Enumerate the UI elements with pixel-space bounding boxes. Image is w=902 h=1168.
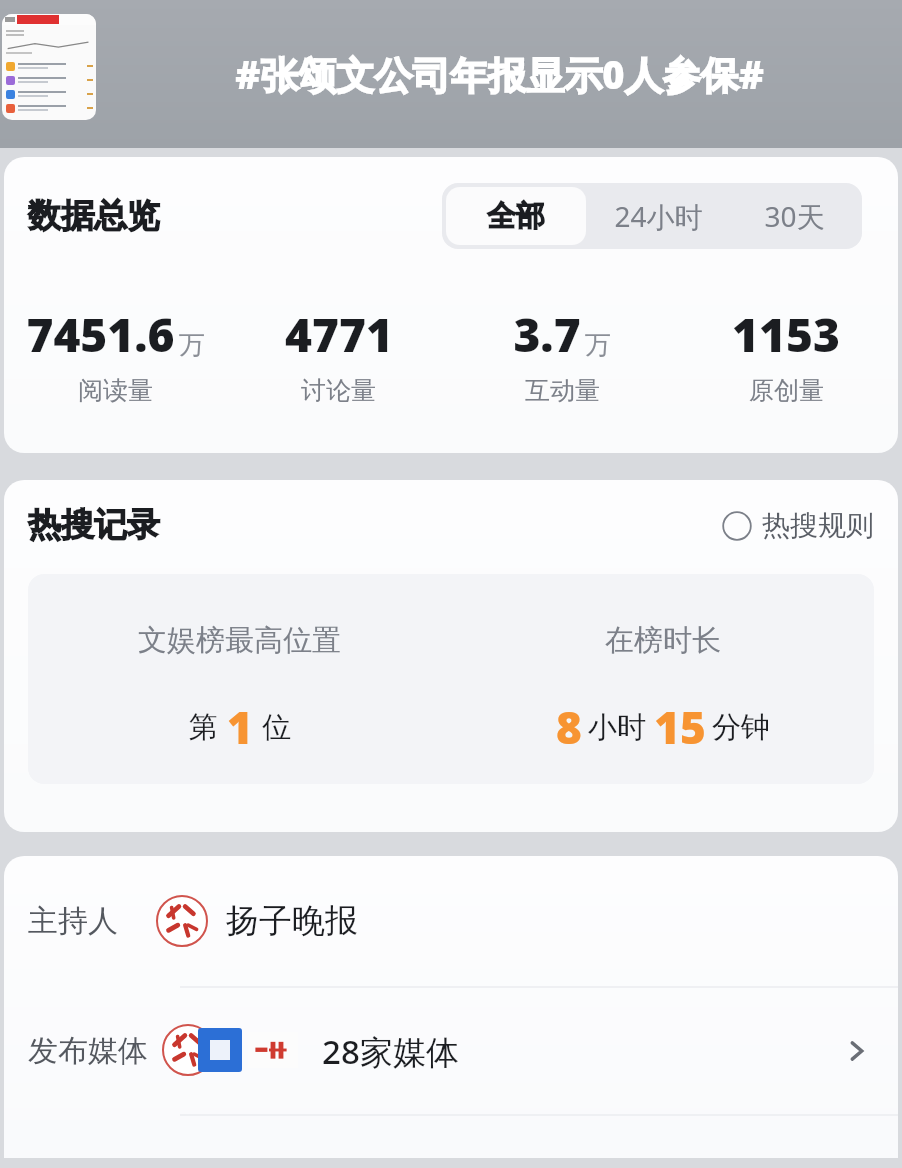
- staticText: 阅读量: [78, 375, 153, 406]
- staticText: 文娱榜最高位置: [138, 622, 341, 659]
- staticText: 7451.6: [26, 303, 175, 366]
- staticText: 原创量: [749, 375, 824, 406]
- staticText: 1153: [732, 303, 840, 366]
- button[interactable]: 主持人: [4, 856, 898, 986]
- staticText: 24小时: [614, 197, 703, 235]
- button[interactable]: Help: [722, 508, 874, 543]
- button[interactable]: 全部: [446, 187, 586, 245]
- staticText: 4771: [285, 303, 393, 366]
- staticText: 讨论量: [301, 375, 376, 406]
- staticText: 万: [585, 329, 611, 362]
- button[interactable]: 24小时: [590, 183, 726, 249]
- staticText: 在榜时长: [605, 622, 721, 659]
- staticText: 万: [179, 329, 205, 362]
- staticText: 8: [556, 697, 582, 757]
- staticText: 热搜规则: [762, 508, 874, 543]
- staticText: 3.7: [513, 303, 581, 366]
- staticText: 小时: [588, 709, 646, 746]
- staticText: 数据总览: [28, 195, 160, 237]
- staticText: 30天: [764, 197, 825, 235]
- button[interactable]: 发布媒体: [4, 988, 898, 1114]
- staticText: 热搜记录: [28, 504, 160, 546]
- other: More media: [840, 1034, 874, 1068]
- button[interactable]: 30天: [726, 183, 862, 249]
- staticText: 发布媒体: [28, 1032, 148, 1070]
- staticText: 28家媒体: [322, 1029, 459, 1074]
- staticText: 15: [654, 697, 706, 757]
- staticText: 全部: [487, 198, 545, 235]
- staticText: #张颂文公司年报显示0人参保#: [235, 48, 764, 100]
- staticText: 第: [189, 709, 218, 746]
- staticText: 位: [262, 709, 291, 746]
- staticText: 分钟: [712, 709, 770, 746]
- staticText: 1: [227, 697, 253, 757]
- button[interactable]: Screenshot thumbnail: [2, 14, 96, 120]
- staticText: 主持人: [28, 902, 118, 940]
- staticText: 互动量: [525, 375, 600, 406]
- other: Help: [722, 511, 752, 541]
- staticText: 扬子晚报: [226, 900, 358, 942]
